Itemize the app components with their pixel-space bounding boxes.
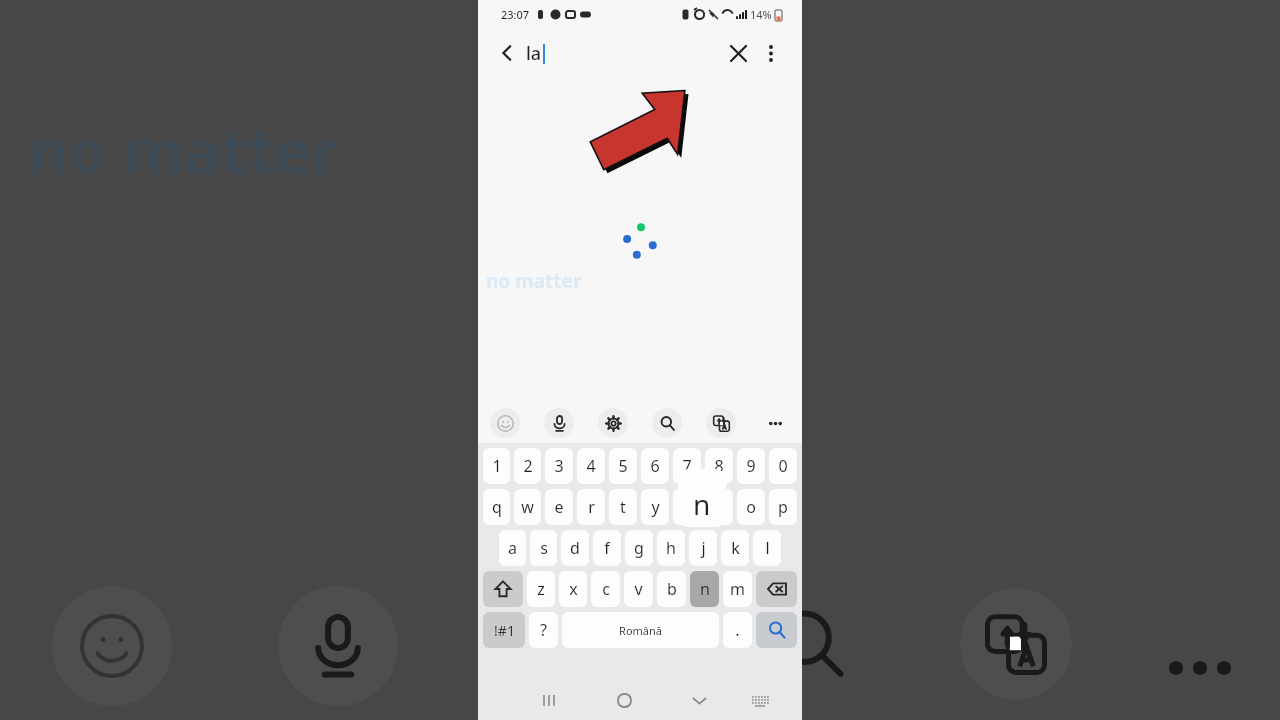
staticText: e xyxy=(554,496,564,518)
button[interactable]: ? xyxy=(529,612,558,648)
button[interactable]: Keyboard layout xyxy=(742,683,776,717)
button[interactable]: 8 xyxy=(705,448,733,484)
button[interactable]: Search xyxy=(756,612,797,648)
staticText: ? xyxy=(540,619,547,641)
button[interactable]: Română xyxy=(562,612,719,648)
button[interactable]: 6 xyxy=(641,448,669,484)
button[interactable]: 1 xyxy=(483,448,510,484)
staticText: l xyxy=(765,537,770,559)
button[interactable]: x xyxy=(559,571,587,607)
button[interactable]: Recents xyxy=(532,683,566,717)
staticText: 1 xyxy=(492,455,502,477)
button[interactable]: n xyxy=(690,571,719,607)
button[interactable]: d xyxy=(561,530,589,566)
staticText: 4 xyxy=(586,455,596,477)
staticText: y xyxy=(651,496,660,518)
button[interactable]: c xyxy=(591,571,620,607)
staticText: n xyxy=(693,485,711,523)
button[interactable]: Back xyxy=(490,36,524,70)
staticText: 9 xyxy=(746,455,756,477)
button[interactable]: 4 xyxy=(577,448,605,484)
button[interactable]: More xyxy=(760,408,790,438)
staticText: 3 xyxy=(554,455,564,477)
button[interactable]: g xyxy=(625,530,653,566)
button[interactable]: Hide keyboard xyxy=(682,683,716,717)
staticText: 14% xyxy=(750,7,772,22)
button[interactable]: i xyxy=(705,489,733,525)
staticText: 8 xyxy=(714,455,724,477)
button[interactable]: 0 xyxy=(769,448,797,484)
button[interactable]: u xyxy=(673,489,701,525)
staticText: 7 xyxy=(682,455,692,477)
staticText: s xyxy=(540,537,548,559)
staticText: n xyxy=(700,578,710,600)
staticText: t xyxy=(620,496,626,518)
button[interactable]: Emoji xyxy=(490,408,520,438)
button[interactable]: 9 xyxy=(737,448,765,484)
button[interactable]: v xyxy=(624,571,653,607)
button[interactable]: z xyxy=(527,571,555,607)
staticText: no matter xyxy=(28,108,340,192)
staticText: z xyxy=(537,578,545,600)
button[interactable]: 5 xyxy=(609,448,637,484)
staticText: v xyxy=(634,578,643,600)
button[interactable]: q xyxy=(483,489,510,525)
button[interactable]: b xyxy=(657,571,686,607)
button[interactable]: p xyxy=(769,489,797,525)
staticText: 2 xyxy=(523,455,533,477)
staticText: k xyxy=(731,537,740,559)
staticText: m xyxy=(730,578,745,600)
staticText: 6 xyxy=(650,455,660,477)
staticText: h xyxy=(666,537,676,559)
button[interactable]: s xyxy=(530,530,557,566)
button[interactable]: Settings xyxy=(598,408,628,438)
button[interactable]: k xyxy=(721,530,749,566)
button[interactable]: . xyxy=(723,612,752,648)
button[interactable]: Backspace xyxy=(756,571,797,607)
button[interactable]: l xyxy=(753,530,781,566)
button[interactable]: 3 xyxy=(545,448,573,484)
button[interactable]: f xyxy=(593,530,621,566)
button[interactable]: 7 xyxy=(673,448,701,484)
button[interactable]: Voice input xyxy=(544,408,574,438)
staticText: f xyxy=(604,537,610,559)
button[interactable]: y xyxy=(641,489,669,525)
button[interactable]: Search xyxy=(652,408,682,438)
staticText: q xyxy=(492,496,502,518)
staticText: 5 xyxy=(618,455,628,477)
button[interactable]: a xyxy=(499,530,526,566)
button[interactable]: Home xyxy=(607,683,641,717)
staticText: j xyxy=(701,537,706,559)
button[interactable]: o xyxy=(737,489,765,525)
button[interactable]: m xyxy=(723,571,752,607)
staticText: r xyxy=(588,496,595,518)
staticText: o xyxy=(746,496,756,518)
staticText: 0 xyxy=(778,455,788,477)
staticText: 23:07 xyxy=(501,7,530,22)
staticText: a xyxy=(508,537,517,559)
button[interactable]: Translate xyxy=(706,408,736,438)
staticText: c xyxy=(602,578,610,600)
staticText: x xyxy=(569,578,578,600)
button[interactable]: 2 xyxy=(514,448,541,484)
button[interactable]: Clear xyxy=(721,36,755,70)
staticText: Română xyxy=(619,623,662,638)
button[interactable]: j xyxy=(689,530,717,566)
staticText: no matter xyxy=(486,268,582,294)
button[interactable]: More options xyxy=(754,36,788,70)
staticText: p xyxy=(778,496,788,518)
staticText: d xyxy=(570,537,580,559)
staticText: . xyxy=(735,619,740,641)
button[interactable]: t xyxy=(609,489,637,525)
staticText: w xyxy=(521,496,534,518)
staticText: !#1 xyxy=(494,621,515,640)
staticText: g xyxy=(634,537,644,559)
button[interactable]: Shift xyxy=(483,571,523,607)
button[interactable]: h xyxy=(657,530,685,566)
button[interactable]: !#1 xyxy=(483,612,525,648)
button[interactable]: e xyxy=(545,489,573,525)
button[interactable]: w xyxy=(514,489,541,525)
button[interactable]: r xyxy=(577,489,605,525)
